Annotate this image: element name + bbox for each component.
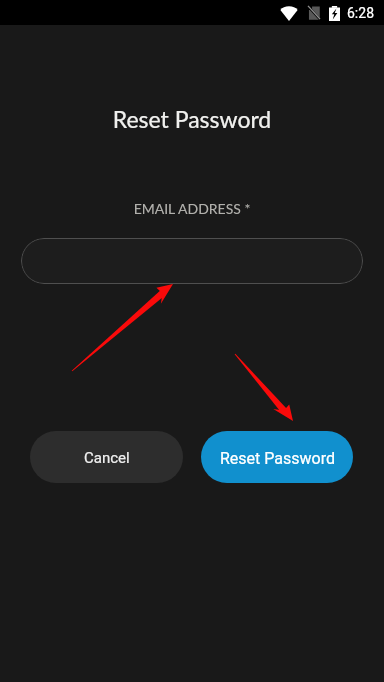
staticText: Reset Password (0, 105, 384, 133)
button[interactable]: Reset Password (201, 431, 353, 483)
other: No SIM card (308, 6, 320, 20)
other: Battery charging (329, 6, 340, 21)
staticText: Cancel (84, 449, 130, 467)
button[interactable]: Cancel (30, 431, 183, 483)
other: Wi-Fi (280, 6, 298, 21)
staticText: Reset Password (220, 449, 335, 468)
staticText: 6:28 (347, 5, 374, 21)
staticText: EMAIL ADDRESS * (0, 200, 384, 217)
button[interactable] (21, 238, 363, 284)
